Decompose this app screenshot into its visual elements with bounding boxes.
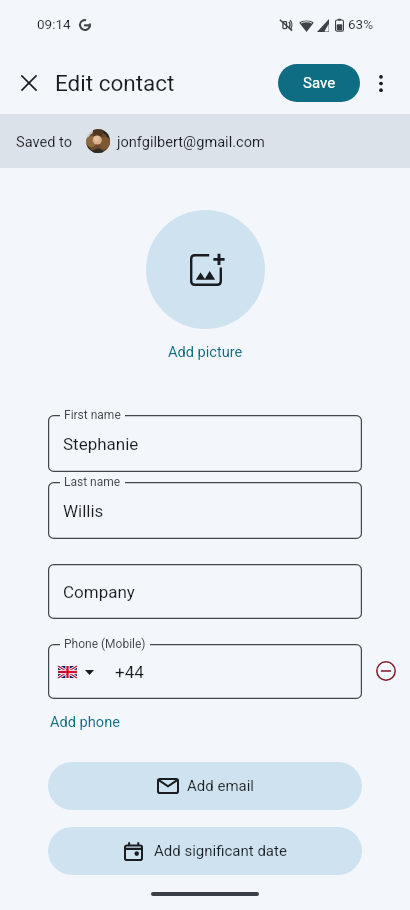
- staticText: 09:14: [37, 16, 71, 32]
- staticText: +44: [115, 662, 144, 682]
- staticText: Edit contact: [55, 70, 175, 96]
- button[interactable]: Stephanie: [48, 415, 362, 472]
- button[interactable]: Add picture: [146, 210, 265, 360]
- staticText: Stephanie: [63, 434, 139, 454]
- button[interactable]: Close: [9, 63, 48, 102]
- staticText: Add picture: [168, 343, 243, 360]
- staticText: jonfgilbert@gmail.com: [117, 133, 265, 150]
- staticText: Add email: [187, 777, 254, 795]
- staticText: Willis: [63, 501, 104, 521]
- button[interactable]: Add significant date: [48, 827, 362, 875]
- button[interactable]: Save: [278, 64, 360, 102]
- button[interactable]: Remove phone: [369, 654, 403, 688]
- staticText: 63%: [348, 16, 374, 32]
- button[interactable]: Add phone: [50, 713, 120, 730]
- staticText: Last name: [64, 475, 121, 489]
- button[interactable]: +44: [48, 644, 362, 699]
- button[interactable]: Add email: [48, 762, 362, 810]
- staticText: Company: [63, 582, 135, 602]
- staticText: Phone (Mobile): [64, 637, 146, 651]
- staticText: First name: [64, 408, 121, 422]
- button[interactable]: Company: [48, 564, 362, 619]
- staticText: Saved to: [16, 133, 73, 150]
- staticText: Save: [303, 74, 336, 92]
- staticText: Add significant date: [154, 842, 287, 860]
- button[interactable]: More options: [362, 64, 400, 102]
- button[interactable]: Willis: [48, 482, 362, 539]
